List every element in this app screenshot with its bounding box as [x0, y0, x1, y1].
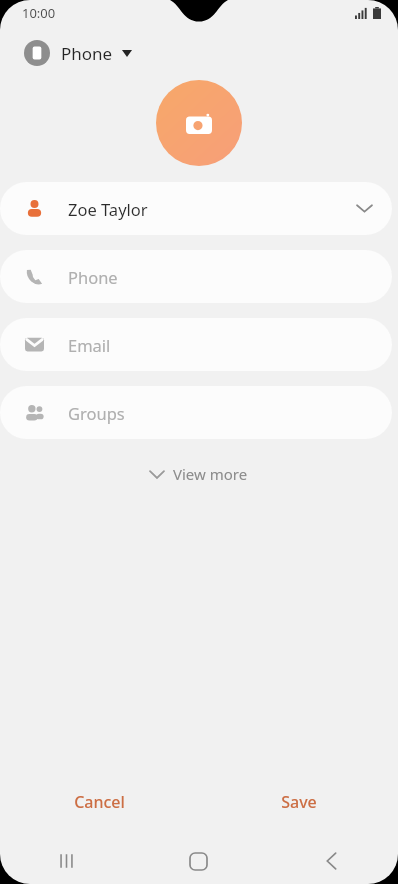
button[interactable]: Back [265, 838, 398, 884]
button[interactable]: Phone [20, 36, 136, 70]
staticText: 10:00 [22, 4, 56, 22]
staticText: Save [281, 791, 317, 813]
button[interactable]: Home [132, 838, 265, 884]
staticText: Phone [61, 42, 113, 65]
button[interactable]: Cancel [0, 778, 199, 826]
staticText: Cancel [74, 791, 125, 813]
staticText: Email [68, 334, 111, 356]
staticText: Groups [68, 402, 125, 424]
button[interactable]: Email [0, 318, 392, 371]
button[interactable]: Recents [0, 838, 132, 884]
staticText: Phone [68, 266, 118, 288]
staticText: Zoe Taylor [68, 198, 148, 220]
button[interactable]: Phone [0, 250, 392, 303]
button[interactable]: Save [199, 778, 398, 826]
staticText: View more [173, 464, 248, 484]
button[interactable]: Groups [0, 386, 392, 439]
button[interactable]: Zoe Taylor [0, 182, 392, 235]
button[interactable]: Add photo [156, 80, 242, 166]
button[interactable]: View more [136, 457, 262, 491]
